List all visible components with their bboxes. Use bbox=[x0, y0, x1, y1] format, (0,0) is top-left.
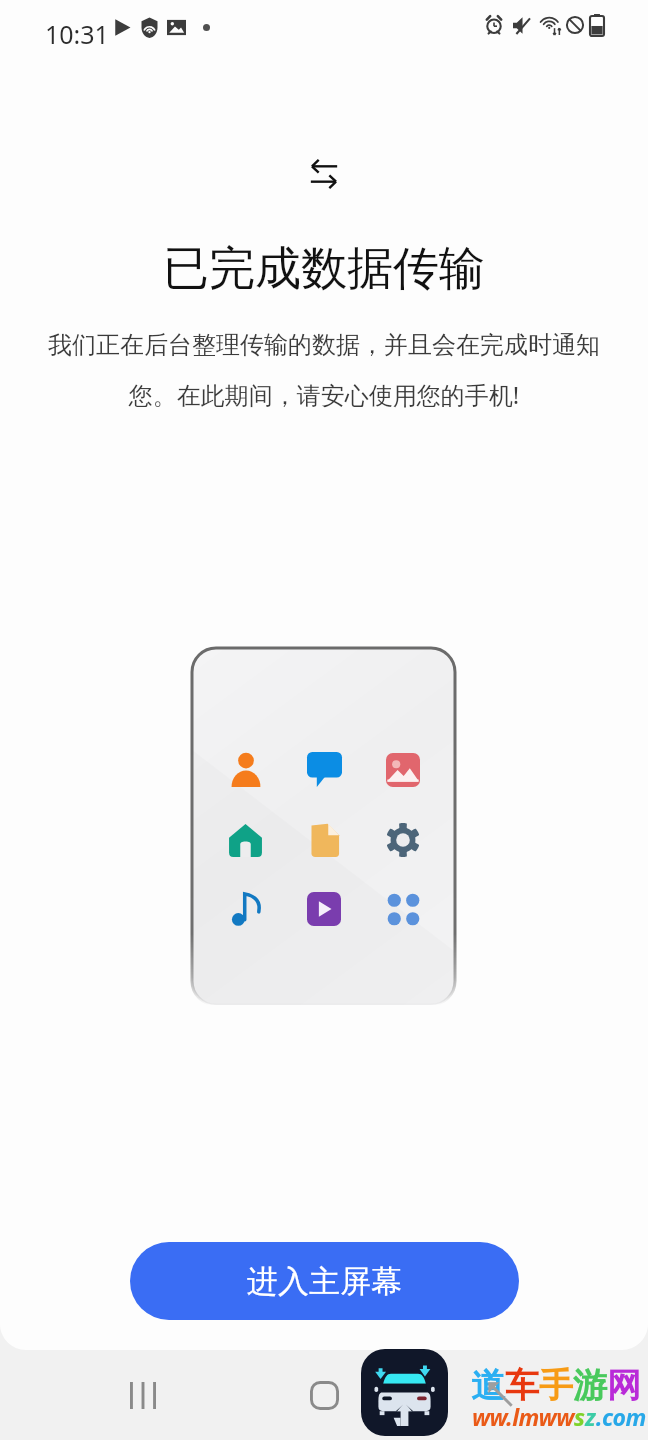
button[interactable]: Home bbox=[294, 1365, 354, 1425]
staticText: 车 bbox=[505, 1364, 539, 1407]
staticText: 手 bbox=[539, 1364, 573, 1407]
staticText: 我们正在后台整理传输的数据，并且会在完成时通知您。在此期间，请安心使用您的手机! bbox=[42, 330, 606, 412]
staticText: 游 bbox=[573, 1364, 607, 1407]
staticText: 已完成数据传输 bbox=[163, 240, 485, 298]
button[interactable]: Recent apps bbox=[113, 1365, 173, 1425]
staticText: 10:31 bbox=[45, 17, 109, 51]
staticText: ww.lmww bbox=[472, 1401, 574, 1432]
staticText: 网 bbox=[607, 1364, 641, 1407]
staticText: .com bbox=[596, 1401, 646, 1432]
button[interactable]: 进入主屏幕 bbox=[130, 1242, 519, 1320]
staticText: s bbox=[574, 1401, 585, 1432]
staticText: 进入主屏幕 bbox=[247, 1262, 402, 1301]
staticText: 道 bbox=[471, 1364, 505, 1407]
staticText: z bbox=[585, 1401, 596, 1432]
